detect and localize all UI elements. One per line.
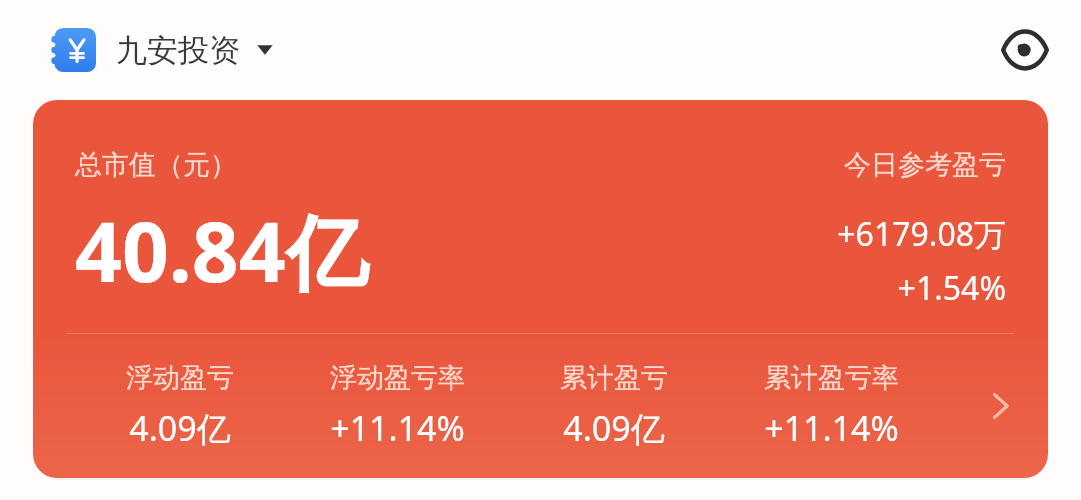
button[interactable]: 九安投资 bbox=[48, 22, 278, 78]
button[interactable]: 累计盈亏 bbox=[552, 357, 676, 455]
staticText: +11.14% bbox=[330, 405, 465, 451]
button[interactable]: More details bbox=[972, 378, 1028, 434]
button[interactable]: Toggle amount visibility bbox=[989, 14, 1061, 86]
staticText: +11.14% bbox=[764, 405, 899, 451]
button[interactable]: 总市值（元） bbox=[33, 100, 1048, 478]
button[interactable]: 累计盈亏率 bbox=[756, 357, 907, 455]
staticText: 4.09亿 bbox=[129, 405, 231, 451]
staticText: 40.84亿 bbox=[75, 194, 368, 306]
button[interactable]: 浮动盈亏 bbox=[118, 357, 242, 455]
staticText: 浮动盈亏 bbox=[126, 361, 234, 395]
staticText: 总市值（元） bbox=[75, 148, 237, 182]
staticText: 累计盈亏 bbox=[560, 361, 668, 395]
staticText: 九安投资 bbox=[116, 31, 240, 70]
button[interactable]: 浮动盈亏率 bbox=[322, 357, 473, 455]
staticText: +1.54% bbox=[897, 266, 1006, 310]
staticText: 累计盈亏率 bbox=[764, 361, 899, 395]
staticText: 今日参考盈亏 bbox=[844, 148, 1006, 182]
staticText: +6179.08万 bbox=[837, 212, 1006, 256]
staticText: 浮动盈亏率 bbox=[330, 361, 465, 395]
staticText: 4.09亿 bbox=[563, 405, 665, 451]
